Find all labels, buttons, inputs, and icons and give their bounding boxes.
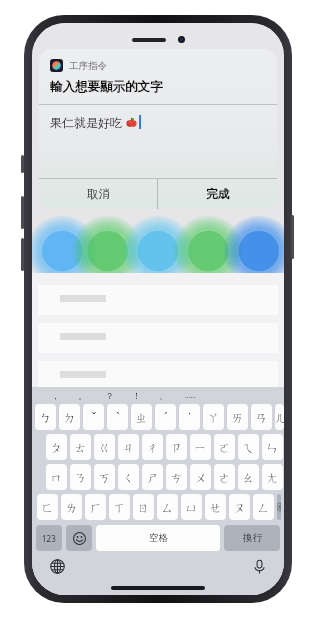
button[interactable]: ㄜ [214, 464, 235, 490]
button[interactable]: Emoji [66, 525, 92, 551]
button[interactable]: ㄅ [35, 404, 56, 430]
button[interactable]: ㄊ [70, 434, 91, 460]
button[interactable]: 換行 [224, 525, 280, 551]
staticText: ㄋ [74, 470, 87, 485]
button[interactable]: ㄦ [275, 404, 284, 430]
button[interactable]: ㄍ [94, 434, 115, 460]
button[interactable]: …… [177, 387, 204, 404]
staticText: 果仁就是好吃 [50, 114, 126, 130]
button[interactable]: ㄕ [142, 464, 163, 490]
button[interactable]: ！ [123, 387, 150, 404]
button[interactable]: 123 [36, 525, 62, 551]
staticText: ㄨ [194, 470, 207, 485]
staticText: ㄑ [122, 470, 135, 485]
button[interactable]: ㄙ [157, 494, 178, 520]
button[interactable]: 。 [69, 387, 96, 404]
button[interactable]: ㄐ [118, 434, 139, 460]
button[interactable]: ㄥ [253, 494, 274, 520]
staticText: ㄔ [146, 440, 159, 455]
staticText: ˊ [164, 409, 168, 425]
staticText: ˋ [116, 409, 120, 425]
button[interactable]: ㄨ [190, 464, 211, 490]
button[interactable]: 取消 [39, 179, 157, 209]
staticText: ？ [105, 390, 114, 401]
staticText: 123 [42, 533, 56, 544]
staticText: ㄩ [185, 500, 198, 515]
staticText: ㄜ [218, 470, 231, 485]
staticText: ㄚ [207, 410, 220, 425]
button[interactable]: ㄡ [229, 494, 250, 520]
button[interactable]: ˊ [155, 404, 176, 430]
staticText: ˙ [188, 409, 191, 425]
staticText: ㄈ [41, 500, 54, 515]
button[interactable]: 空格 [96, 525, 220, 551]
button[interactable]: ㄢ [251, 404, 272, 430]
button[interactable]: ㄈ [37, 494, 58, 520]
staticText: ㄉ [63, 410, 76, 425]
button[interactable]: ㄎ [94, 464, 115, 490]
button[interactable]: ㄚ [203, 404, 224, 430]
button[interactable]: ㄑ [118, 464, 139, 490]
button[interactable]: ㄠ [238, 464, 259, 490]
button[interactable]: ㄔ [142, 434, 163, 460]
button[interactable]: ˇ [83, 404, 104, 430]
staticText: …… [185, 391, 197, 401]
button[interactable]: Change keyboard [46, 555, 68, 577]
button[interactable]: Backspace [277, 494, 281, 520]
button[interactable]: ㄒ [109, 494, 130, 520]
button[interactable]: ㄤ [262, 464, 283, 490]
staticText: ㄌ [65, 500, 78, 515]
staticText: ㄙ [161, 500, 174, 515]
staticText: 換行 [243, 532, 262, 544]
button[interactable]: ㄇ [46, 464, 67, 490]
button[interactable]: ㄧ [190, 434, 211, 460]
staticText: 取消 [87, 187, 110, 201]
button[interactable]: ㄉ [59, 404, 80, 430]
button[interactable]: ㄋ [70, 464, 91, 490]
staticText: ㄖ [137, 500, 150, 515]
staticText: 、 [159, 390, 168, 401]
button[interactable]: ㄝ [205, 494, 226, 520]
staticText: ， [51, 390, 60, 401]
staticText: ㄍ [98, 440, 111, 455]
button[interactable]: Dictation [248, 555, 270, 577]
staticText: 輸入想要顯示的文字 [50, 79, 163, 95]
staticText: ㄘ [170, 470, 183, 485]
staticText: ㄎ [98, 470, 111, 485]
staticText: ㄢ [255, 410, 268, 425]
button[interactable]: ㄘ [166, 464, 187, 490]
button[interactable]: ㄗ [166, 434, 187, 460]
staticText: ㄕ [146, 470, 159, 485]
staticText: ㄓ [135, 410, 148, 425]
staticText: ㄧ [194, 440, 207, 455]
button[interactable]: ㄩ [181, 494, 202, 520]
staticText: ㄆ [50, 440, 63, 455]
staticText: ㄏ [89, 500, 102, 515]
button[interactable]: ， [42, 387, 69, 404]
button[interactable]: ㄏ [85, 494, 106, 520]
button[interactable]: ㄌ [61, 494, 82, 520]
button[interactable]: ㄟ [238, 434, 259, 460]
staticText: ！ [132, 390, 141, 401]
button[interactable]: ˙ [179, 404, 200, 430]
staticText: ㄠ [242, 470, 255, 485]
staticText: ㄡ [233, 500, 246, 515]
button[interactable]: ㄛ [214, 434, 235, 460]
staticText: ㄊ [74, 440, 87, 455]
staticText: ㄦ [275, 410, 284, 425]
staticText: ㄗ [170, 440, 183, 455]
button[interactable]: ㄆ [46, 434, 67, 460]
button[interactable]: ㄖ [133, 494, 154, 520]
button[interactable]: ㄣ [262, 434, 283, 460]
button[interactable]: 、 [150, 387, 177, 404]
staticText: ㄐ [122, 440, 135, 455]
staticText: ㄒ [113, 500, 126, 515]
staticText: ㄟ [242, 440, 255, 455]
button[interactable]: ？ [96, 387, 123, 404]
staticText: ㄛ [218, 440, 231, 455]
button[interactable]: ㄓ [131, 404, 152, 430]
button[interactable]: ˋ [107, 404, 128, 430]
button[interactable]: ㄞ [227, 404, 248, 430]
staticText: ㄣ [266, 440, 279, 455]
button[interactable]: 完成 [158, 179, 277, 209]
